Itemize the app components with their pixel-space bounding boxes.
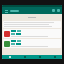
button[interactable] bbox=[3, 21, 61, 28]
button[interactable]: Menu bbox=[4, 9, 8, 13]
button[interactable] bbox=[3, 29, 61, 38]
button[interactable]: Tab 4 bbox=[47, 55, 62, 59]
button[interactable]: Tab 2 bbox=[17, 55, 32, 59]
button[interactable] bbox=[10, 10, 19, 12]
button[interactable] bbox=[3, 15, 61, 20]
button[interactable]: Search bbox=[52, 9, 55, 12]
button[interactable]: Tab 1 bbox=[2, 55, 17, 59]
button[interactable]: More options bbox=[57, 9, 60, 12]
button[interactable]: Tab 3 bbox=[32, 55, 47, 59]
button[interactable] bbox=[3, 39, 61, 48]
